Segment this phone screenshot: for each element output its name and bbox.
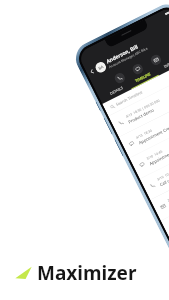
button[interactable]: Action [131, 62, 145, 76]
staticText: 4/13 18:30 | 059 30 000 [125, 98, 160, 119]
button[interactable]: INTERACTIONS [155, 49, 169, 76]
staticText: Maximizer [37, 260, 137, 286]
staticText: Product demo [127, 107, 155, 125]
button[interactable]: TIMELINE [128, 68, 159, 89]
button[interactable]: 3/10 10:30 [140, 131, 169, 200]
staticText: 3/10 14:45 [146, 149, 163, 161]
staticText: 4/13 18:30 [135, 128, 153, 140]
button[interactable]: DETAILS [102, 82, 132, 102]
staticText: DETAILS [109, 85, 124, 96]
button[interactable]: 2/28 09:15 [150, 152, 169, 221]
button[interactable]: 4/13 18:30 [119, 89, 169, 158]
staticText: Appointment [148, 150, 169, 167]
staticText: INTERACTIONS [163, 53, 169, 69]
staticText: TIMELINE [134, 71, 151, 83]
staticText: Appointment Created [138, 121, 169, 146]
button[interactable]: Action [149, 53, 163, 67]
button[interactable]: Action [113, 71, 127, 85]
staticText: Call completed [159, 169, 169, 188]
staticText: Anderson, Bill [105, 43, 139, 65]
button[interactable]: 3/10 14:45 [129, 110, 169, 179]
staticText: 3/10 10:30 [156, 170, 169, 182]
button[interactable]: Back [86, 66, 97, 77]
staticText: Account Manager, ABC Bike [108, 46, 148, 69]
staticText: 2/28 09:15 [167, 191, 169, 203]
button[interactable]: 4/13 18:30 | 059 30 000 [108, 68, 169, 137]
button[interactable]: 2/20 16:00 [161, 173, 169, 242]
staticText: Search Timeline [115, 89, 143, 107]
staticText: BA [97, 64, 105, 71]
